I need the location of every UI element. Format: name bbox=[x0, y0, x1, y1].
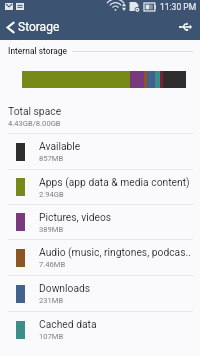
staticText: Total space bbox=[8, 105, 62, 117]
button[interactable]: USB bbox=[179, 23, 200, 31]
staticText: 11:30 PM bbox=[160, 2, 197, 12]
staticText: Available bbox=[39, 140, 81, 152]
button[interactable]: Pictures, videos bbox=[0, 205, 200, 239]
button[interactable]: Available bbox=[0, 134, 200, 169]
button[interactable]: Storage bbox=[0, 16, 68, 38]
staticText: Pictures, videos bbox=[39, 211, 112, 223]
staticText: Internal storage bbox=[8, 46, 68, 56]
staticText: 857MB bbox=[39, 154, 64, 163]
staticText: 4.43GB/8.00GB bbox=[8, 119, 61, 128]
staticText: Cached data bbox=[39, 318, 97, 330]
staticText: 107MB bbox=[39, 332, 64, 341]
button[interactable]: Downloads bbox=[0, 276, 200, 311]
staticText: 2.94GB bbox=[39, 190, 64, 199]
button[interactable]: Audio (music, ringtones, podcas.. bbox=[0, 240, 200, 275]
staticText: Downloads bbox=[39, 282, 91, 294]
staticText: Storage bbox=[18, 20, 60, 34]
staticText: Apps (app data & media content) bbox=[39, 176, 190, 188]
staticText: 231MB bbox=[39, 296, 64, 305]
staticText: Audio (music, ringtones, podcas.. bbox=[39, 246, 191, 258]
staticText: 7.46MB bbox=[39, 260, 66, 269]
button[interactable]: Apps (app data & media content) bbox=[0, 170, 200, 204]
staticText: 389MB bbox=[39, 225, 64, 234]
button[interactable]: Cached data bbox=[0, 312, 200, 347]
